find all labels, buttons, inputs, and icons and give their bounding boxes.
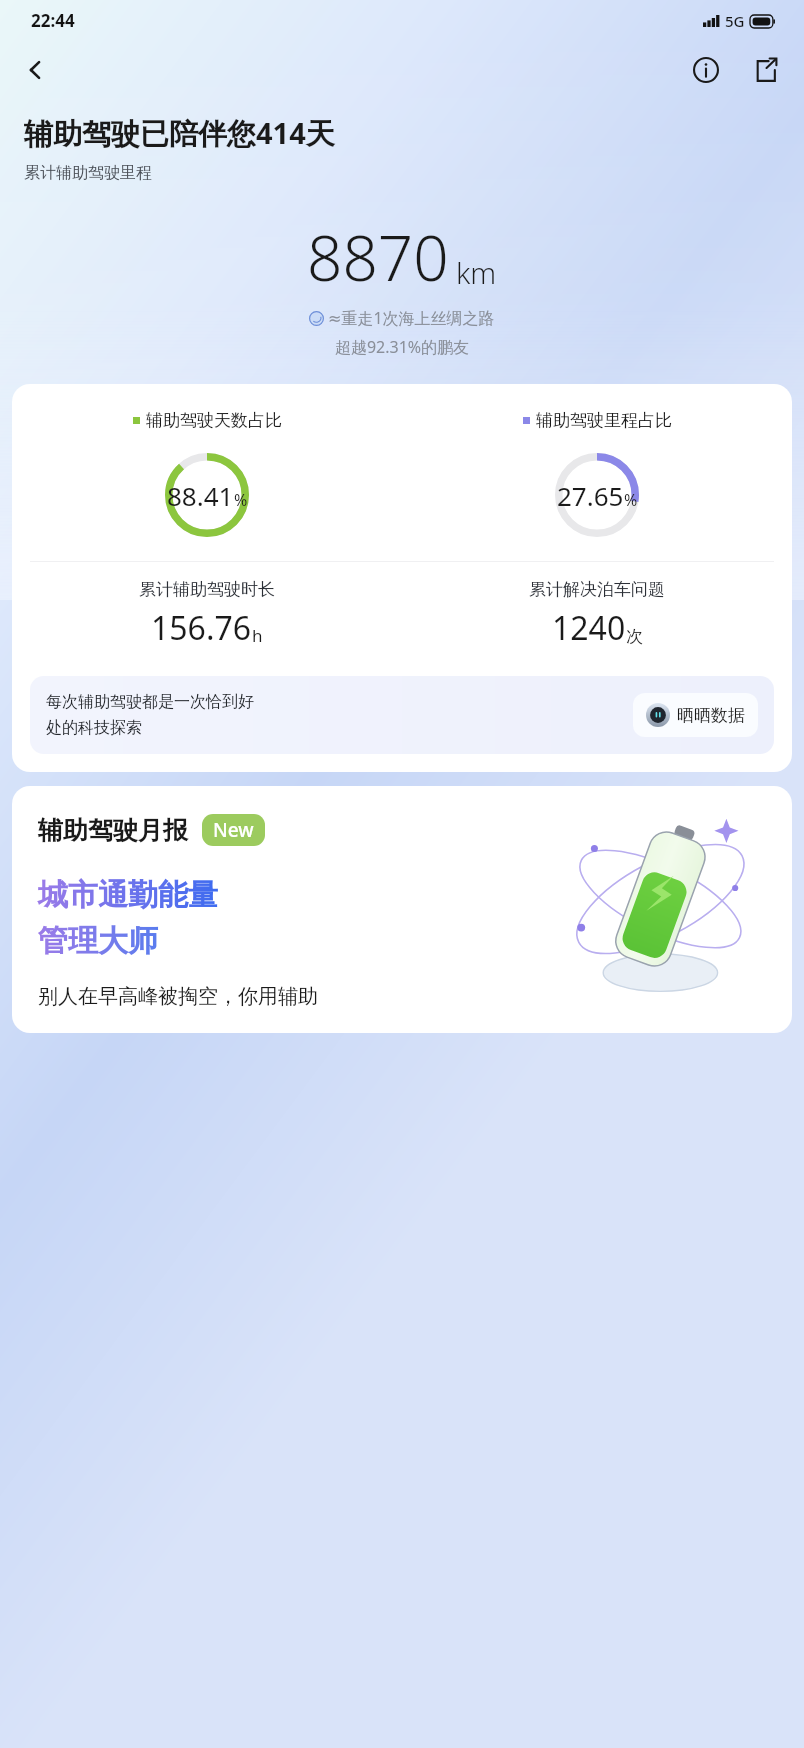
staticText: 辅助驾驶已陪伴您414天: [24, 113, 335, 153]
button[interactable]: Back: [12, 46, 60, 94]
button[interactable]: Info: [682, 46, 730, 94]
staticText: %: [624, 489, 638, 511]
staticText: h: [252, 624, 263, 647]
staticText: 次: [626, 626, 643, 647]
button[interactable]: 每次辅助驾驶都是一次恰到好 处的科技探索: [30, 676, 774, 754]
staticText: 超越92.31%的鹏友: [24, 336, 780, 358]
staticText: 别人在早高峰被掏空，你用辅助: [38, 984, 318, 1009]
staticText: 27.65: [557, 478, 624, 513]
staticText: 1240: [552, 606, 626, 650]
staticText: 晒晒数据: [677, 705, 745, 726]
staticText: km: [456, 253, 497, 292]
staticText: 管理大师: [38, 922, 158, 960]
staticText: 辅助驾驶里程占比: [536, 410, 672, 431]
staticText: 156.76: [151, 606, 252, 650]
staticText: New: [213, 817, 254, 843]
staticText: 88.41: [167, 478, 234, 513]
staticText: 累计辅助驾驶里程: [24, 163, 152, 183]
staticText: 8870: [307, 215, 449, 299]
button[interactable]: Share: [742, 46, 790, 94]
staticText: 22:44: [31, 9, 75, 32]
staticText: 城市通勤能量: [38, 876, 218, 914]
button[interactable]: 辅助驾驶月报: [12, 786, 792, 1033]
staticText: %: [234, 489, 248, 511]
staticText: ≈重走1次海上丝绸之路: [328, 307, 495, 329]
staticText: 每次辅助驾驶都是一次恰到好 处的科技探索: [46, 692, 625, 738]
staticText: 辅助驾驶月报: [38, 815, 188, 846]
staticText: 5G: [725, 11, 745, 31]
staticText: 累计解决泊车问题: [529, 579, 665, 600]
button[interactable]: 晒晒数据: [633, 693, 758, 737]
staticText: 累计辅助驾驶时长: [139, 579, 275, 600]
staticText: 辅助驾驶天数占比: [146, 410, 282, 431]
